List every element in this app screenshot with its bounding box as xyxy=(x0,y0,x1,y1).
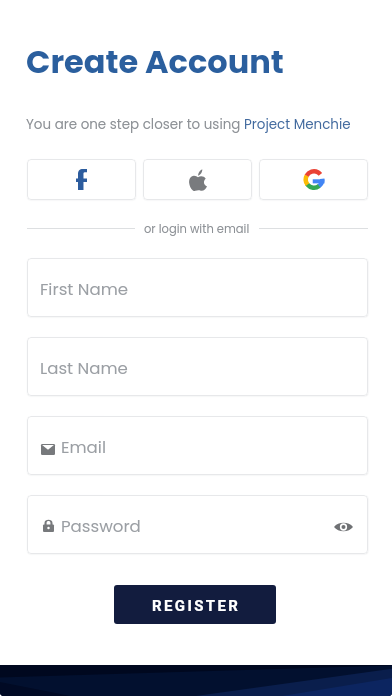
staticText: First Name xyxy=(40,278,129,301)
staticText: Last Name xyxy=(40,357,128,380)
button[interactable]: Sign up with Google xyxy=(259,159,368,200)
button[interactable]: Show password xyxy=(331,513,355,537)
button[interactable]: Password xyxy=(27,495,368,554)
staticText: REGISTER xyxy=(152,597,241,615)
button[interactable]: REGISTER xyxy=(114,585,276,624)
staticText: You are one step closer to using xyxy=(26,115,244,134)
button[interactable]: Email xyxy=(27,416,368,475)
button[interactable]: Sign up with Apple xyxy=(143,159,252,200)
button[interactable]: First Name xyxy=(27,258,368,317)
staticText: Create Account xyxy=(26,39,284,84)
button[interactable]: Sign up with Facebook xyxy=(27,159,136,200)
staticText: Project Menchie xyxy=(244,115,351,134)
staticText: Password xyxy=(61,515,141,538)
button[interactable]: Last Name xyxy=(27,337,368,396)
staticText: or login with email xyxy=(144,221,250,237)
staticText: Email xyxy=(61,436,106,459)
